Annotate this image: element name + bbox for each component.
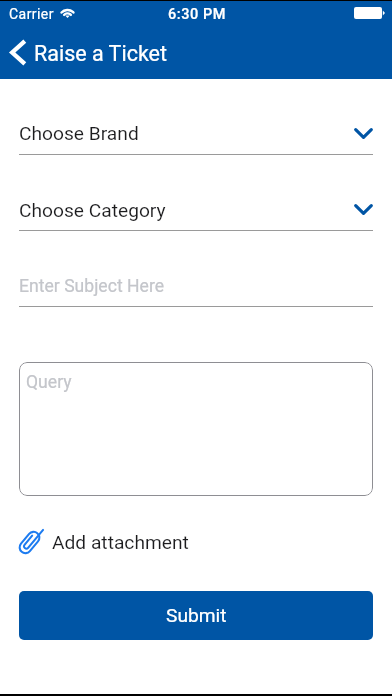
button[interactable]: Choose Brand bbox=[19, 116, 373, 156]
button[interactable]: Add attachment bbox=[18, 523, 189, 559]
staticText: Carrier bbox=[9, 6, 54, 22]
button[interactable]: Choose Category bbox=[19, 193, 373, 232]
staticText: Submit bbox=[166, 604, 227, 627]
other: Back bbox=[10, 39, 27, 66]
button[interactable]: Submit bbox=[19, 591, 373, 640]
staticText: Enter Subject Here bbox=[19, 276, 165, 297]
staticText: Query bbox=[26, 372, 72, 393]
staticText: 6:30 PM bbox=[168, 6, 226, 23]
staticText: Choose Brand bbox=[19, 122, 139, 145]
button[interactable]: Enter Subject Here bbox=[19, 269, 373, 308]
button[interactable]: Query bbox=[19, 362, 373, 496]
button[interactable]: Back bbox=[10, 39, 168, 66]
staticText: Add attachment bbox=[52, 531, 189, 554]
staticText: Choose Category bbox=[19, 199, 166, 222]
staticText: Raise a Ticket bbox=[34, 41, 168, 66]
